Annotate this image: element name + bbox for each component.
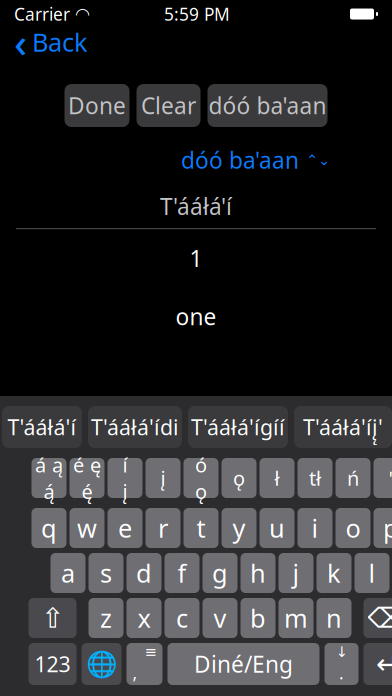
staticText: ⌃⌄ bbox=[306, 152, 330, 168]
button[interactable]: Return bbox=[363, 643, 392, 685]
button[interactable]: b bbox=[240, 598, 275, 638]
button[interactable]: c bbox=[164, 598, 199, 638]
button[interactable]: l bbox=[354, 553, 389, 593]
button[interactable]: k bbox=[316, 553, 351, 593]
staticText: ą́ bbox=[43, 478, 54, 505]
staticText: Diné/Eng bbox=[194, 649, 293, 679]
staticText: T'ááłá'í bbox=[7, 413, 76, 441]
staticText: r bbox=[158, 511, 168, 545]
staticText: Back bbox=[32, 25, 88, 59]
button[interactable]: v bbox=[202, 598, 237, 638]
staticText: Carrier bbox=[14, 2, 70, 25]
button[interactable]: q bbox=[31, 508, 66, 548]
button[interactable]: ‹ bbox=[0, 11, 102, 72]
button[interactable]: ' bbox=[373, 458, 392, 498]
button[interactable]: u bbox=[259, 508, 294, 548]
button[interactable]: tł bbox=[297, 458, 332, 498]
staticText: a bbox=[61, 556, 75, 590]
staticText: j bbox=[292, 556, 299, 590]
button[interactable]: ǫ bbox=[221, 458, 256, 498]
button[interactable]: m bbox=[278, 598, 313, 638]
staticText: į bbox=[160, 465, 165, 491]
button[interactable]: T'ááłá'í bbox=[2, 406, 82, 448]
button[interactable]: f bbox=[164, 553, 199, 593]
button[interactable]: t bbox=[183, 508, 218, 548]
button[interactable]: é bbox=[69, 458, 104, 498]
button[interactable]: dóó ba'aan bbox=[207, 84, 327, 127]
staticText: 5:59 PM bbox=[164, 2, 230, 25]
staticText: n bbox=[326, 601, 342, 635]
button[interactable]: Comma bbox=[126, 643, 162, 685]
button[interactable]: Period bbox=[324, 643, 358, 685]
staticText: v bbox=[213, 601, 226, 635]
button[interactable]: T'ááłá'ídi bbox=[88, 406, 182, 448]
staticText: á bbox=[35, 451, 46, 478]
staticText: T'ááłá'ídi bbox=[91, 413, 179, 441]
staticText: l bbox=[368, 556, 375, 590]
button[interactable]: á bbox=[31, 458, 66, 498]
button[interactable]: Next keyboard bbox=[81, 643, 121, 685]
button[interactable]: p bbox=[373, 508, 392, 548]
button[interactable]: r bbox=[145, 508, 180, 548]
button[interactable]: y bbox=[221, 508, 256, 548]
staticText: t bbox=[196, 511, 205, 545]
button[interactable]: n bbox=[316, 598, 351, 638]
button[interactable]: Delete bbox=[363, 598, 392, 638]
staticText: d bbox=[136, 556, 152, 590]
button[interactable]: í bbox=[107, 458, 142, 498]
button[interactable]: 123 bbox=[28, 643, 76, 685]
button[interactable]: s bbox=[88, 553, 123, 593]
staticText: 123 bbox=[34, 650, 70, 678]
staticText: ł bbox=[274, 465, 279, 491]
button[interactable]: T'ááłá'íį̨' bbox=[294, 406, 392, 448]
button[interactable]: ń bbox=[335, 458, 370, 498]
staticText: Clear bbox=[141, 90, 196, 120]
staticText: e bbox=[118, 511, 132, 545]
button[interactable]: o bbox=[335, 508, 370, 548]
staticText: , bbox=[132, 661, 137, 684]
button[interactable]: z bbox=[88, 598, 123, 638]
button[interactable]: dóó ba'aan bbox=[181, 141, 330, 179]
staticText: g bbox=[212, 556, 228, 590]
staticText: y bbox=[232, 511, 245, 545]
staticText: b bbox=[250, 601, 266, 635]
staticText: 🌐 bbox=[85, 649, 117, 678]
staticText: ⇧ bbox=[41, 602, 64, 634]
button[interactable]: w bbox=[69, 508, 104, 548]
button[interactable]: Clear bbox=[136, 84, 200, 127]
staticText: ' bbox=[388, 465, 392, 491]
button[interactable]: j bbox=[278, 553, 313, 593]
button[interactable]: a bbox=[50, 553, 85, 593]
button[interactable]: Diné/Eng bbox=[167, 643, 319, 685]
staticText: u bbox=[269, 511, 285, 545]
staticText: one bbox=[175, 301, 216, 331]
button[interactable]: g bbox=[202, 553, 237, 593]
staticText: ◠ bbox=[75, 4, 90, 24]
button[interactable]: x bbox=[126, 598, 161, 638]
staticText: ‹ bbox=[14, 15, 27, 68]
button[interactable]: į bbox=[145, 458, 180, 498]
staticText: q bbox=[41, 511, 57, 545]
button[interactable]: i bbox=[297, 508, 332, 548]
button[interactable]: e bbox=[107, 508, 142, 548]
staticText: ń bbox=[347, 465, 359, 491]
button[interactable]: Shift bbox=[28, 598, 76, 638]
staticText: 1 bbox=[189, 243, 202, 273]
staticText: ≡ bbox=[144, 644, 156, 660]
staticText: s bbox=[100, 556, 112, 590]
staticText: p bbox=[383, 511, 392, 545]
staticText: m bbox=[284, 601, 308, 635]
button[interactable]: Done bbox=[64, 84, 129, 127]
staticText: ↓ bbox=[335, 644, 347, 660]
staticText: dóó ba'aan bbox=[181, 145, 299, 175]
staticText: k bbox=[327, 556, 341, 590]
staticText: T'ááłá'íį̨' bbox=[303, 413, 383, 441]
staticText: c bbox=[176, 601, 188, 635]
button[interactable]: h bbox=[240, 553, 275, 593]
staticText: f bbox=[177, 556, 186, 590]
button[interactable]: ł bbox=[259, 458, 294, 498]
button[interactable]: d bbox=[126, 553, 161, 593]
button[interactable]: ó bbox=[183, 458, 218, 498]
staticText: ↵ bbox=[376, 648, 392, 680]
button[interactable]: T'ááłá'ígíí bbox=[188, 406, 288, 448]
